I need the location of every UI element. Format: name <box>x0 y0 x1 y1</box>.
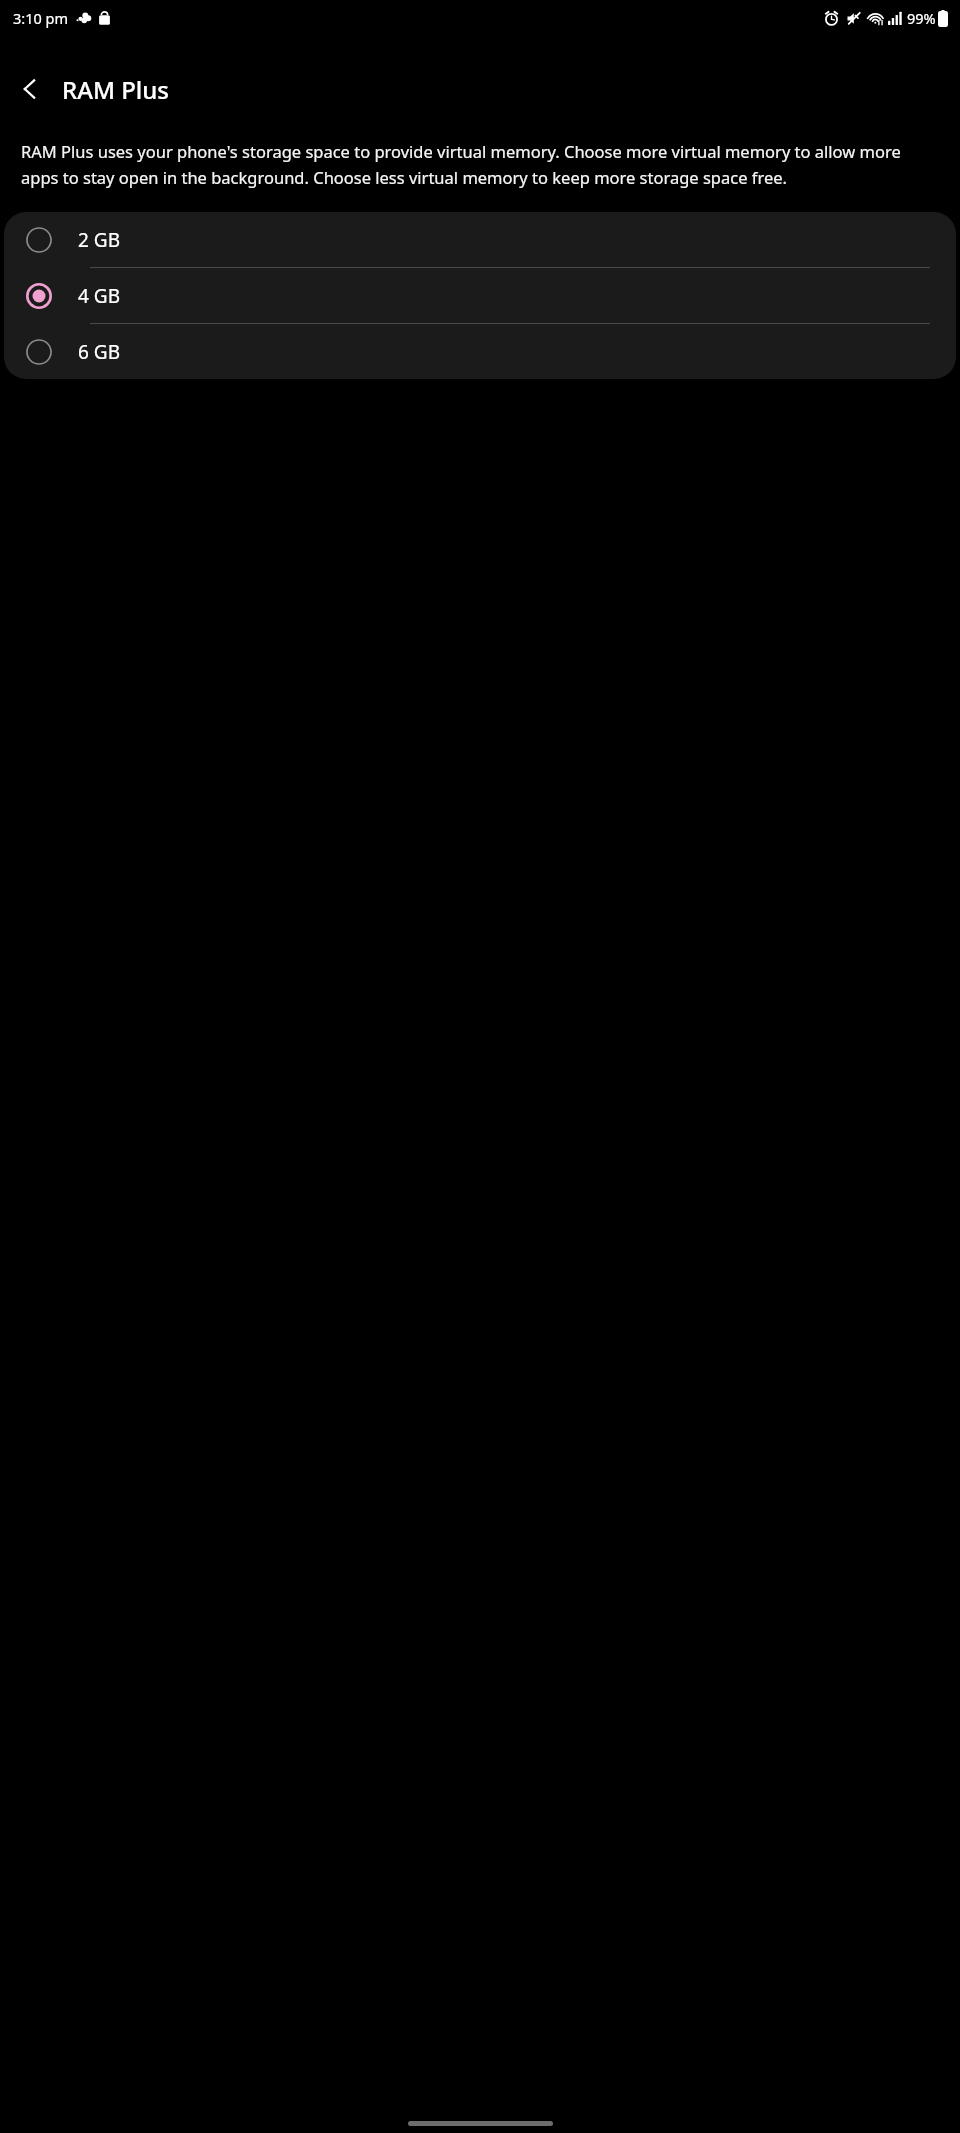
button[interactable]: 2 GB <box>4 212 956 268</box>
staticText: 6 GB <box>78 339 120 365</box>
staticText: 2 GB <box>78 227 120 253</box>
staticText: 4 GB <box>78 283 120 309</box>
button[interactable]: Back <box>8 67 52 111</box>
staticText: RAM Plus <box>62 73 169 106</box>
staticText: 3:10 pm <box>13 8 69 28</box>
button[interactable]: 4 GB <box>4 268 956 324</box>
button[interactable]: 6 GB <box>4 324 956 379</box>
staticText: RAM Plus uses your phone's storage space… <box>21 140 942 189</box>
staticText: 99% <box>907 8 936 28</box>
